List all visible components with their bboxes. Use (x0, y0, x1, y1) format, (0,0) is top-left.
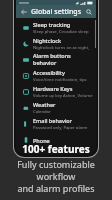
staticText: Weather (33, 101, 56, 108)
staticText: Alarm buttons behavior (33, 52, 93, 66)
button[interactable]: Accessibility (16, 68, 96, 84)
staticText: Phone (33, 137, 50, 144)
button[interactable]: Email behavior (16, 116, 96, 132)
staticText: Nightclock (33, 37, 62, 44)
staticText: Hardware Keys (33, 85, 73, 92)
staticText: Nightclock turns on at night, dim screen (33, 45, 93, 51)
staticText: and alarm profiles (17, 182, 95, 194)
button[interactable]: Phone (16, 132, 96, 148)
button[interactable]: Search (83, 6, 94, 17)
button[interactable]: Nightclock (16, 36, 96, 52)
staticText: Calendar (33, 109, 51, 115)
staticText: Voice/time notification, tips notificati… (33, 77, 93, 83)
button[interactable]: Back (18, 6, 29, 17)
button[interactable]: Alarm buttons behavior (16, 52, 96, 68)
staticText: Global settings (31, 7, 82, 17)
staticText: Password only, Paper alarm (33, 125, 88, 131)
button[interactable]: Weather (16, 100, 96, 116)
staticText: Email behavior (33, 117, 73, 124)
staticText: Fully customizable workflow (4, 158, 108, 182)
button[interactable]: Hardware Keys (16, 84, 96, 100)
staticText: Sleep tracking (33, 21, 71, 28)
staticText: Accessibility (33, 69, 65, 76)
staticText: Volume up key Action, Volume down key ac… (33, 93, 93, 99)
staticText: Sleep phase, Circadian sleep cycles (33, 29, 93, 35)
button[interactable]: Sleep tracking (16, 20, 96, 36)
staticText: 100+ features (22, 142, 90, 156)
